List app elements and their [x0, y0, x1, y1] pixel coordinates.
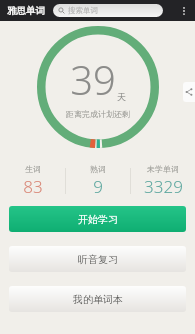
staticText: 未学单词 — [147, 164, 179, 174]
button[interactable]: 雅思单词 — [5, 4, 47, 18]
staticText: 天 — [117, 91, 126, 102]
button[interactable]: 我的单词本 — [9, 286, 186, 312]
staticText: 9 — [93, 175, 103, 198]
staticText: 听音复习 — [78, 253, 118, 266]
button[interactable]: 生词 — [0, 164, 65, 198]
button[interactable]: 开始学习 — [9, 206, 186, 232]
button[interactable]: 搜索单词 — [53, 4, 163, 17]
staticText: 3329 — [144, 175, 183, 198]
button[interactable]: 听音复习 — [9, 246, 186, 272]
staticText: 开始学习 — [78, 213, 118, 226]
staticText: 我的单词本 — [73, 293, 123, 306]
button[interactable]: Share — [183, 82, 195, 102]
staticText: 距离完成计划还剩 — [66, 109, 130, 119]
staticText: 83 — [23, 175, 43, 198]
staticText: 生词 — [25, 164, 41, 174]
button[interactable]: 未学单词 — [131, 164, 195, 198]
button[interactable]: 熟词 — [66, 164, 130, 198]
staticText: 熟词 — [90, 164, 106, 174]
staticText: 雅思单词 — [7, 5, 45, 17]
staticText: 39 — [70, 52, 116, 106]
staticText: 搜索单词 — [68, 6, 98, 15]
button[interactable]: More options — [175, 2, 193, 20]
